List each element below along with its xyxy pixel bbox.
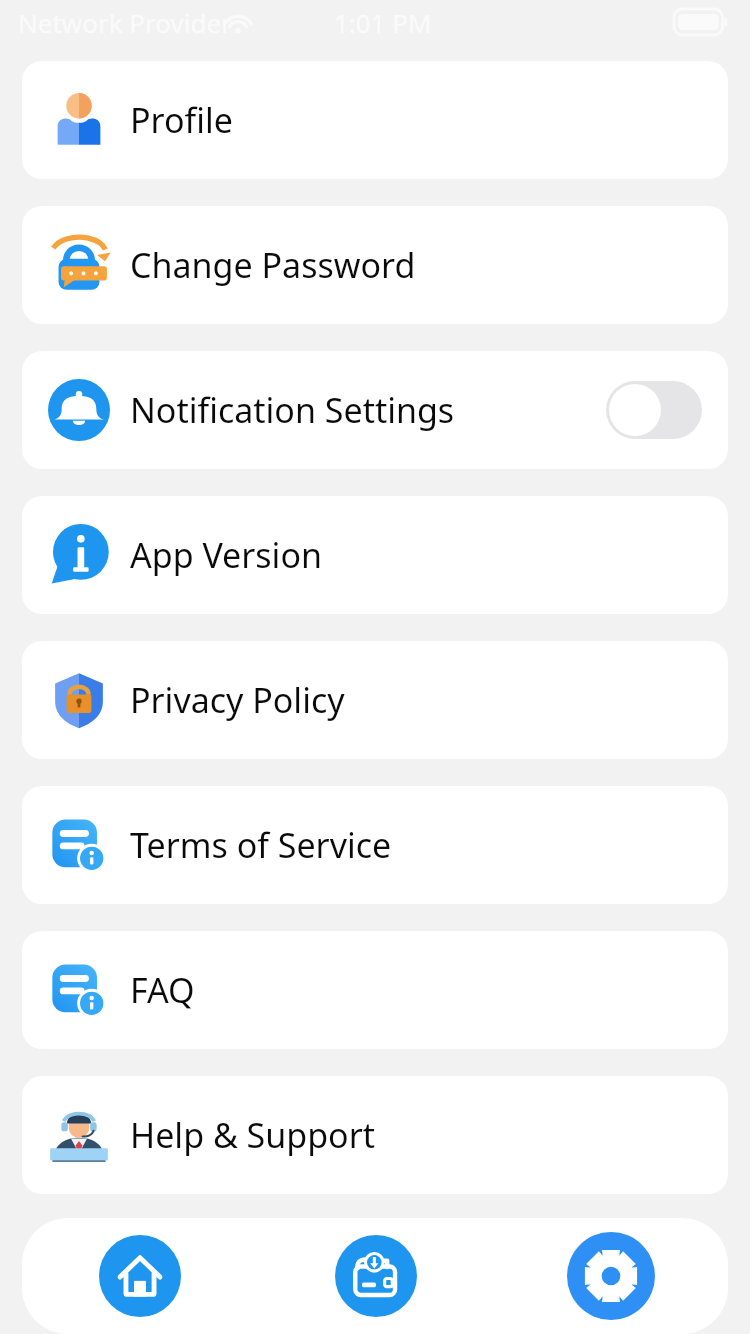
staticText: Notification Settings — [130, 387, 455, 433]
button[interactable]: Home — [99, 1235, 181, 1317]
button[interactable]: App Version — [22, 496, 728, 614]
button[interactable]: FAQ — [22, 931, 728, 1049]
button[interactable]: Help & Support — [22, 1076, 728, 1194]
staticText: Profile — [130, 97, 233, 143]
button[interactable]: Terms of Service — [22, 786, 728, 904]
staticText: App Version — [130, 532, 322, 578]
staticText: FAQ — [130, 967, 195, 1013]
staticText: Privacy Policy — [130, 677, 345, 723]
staticText: Terms of Service — [130, 822, 392, 868]
button[interactable]: Privacy Policy — [22, 641, 728, 759]
staticText: Help & Support — [130, 1112, 376, 1158]
button[interactable]: Profile — [22, 61, 728, 179]
button[interactable]: Wallet — [335, 1235, 417, 1317]
button[interactable]: Settings — [567, 1232, 655, 1320]
button[interactable]: Notification Settings — [22, 351, 728, 469]
button[interactable]: Change Password — [22, 206, 728, 324]
staticText: Change Password — [130, 242, 416, 288]
button[interactable]: Toggle notification settings — [606, 381, 702, 439]
